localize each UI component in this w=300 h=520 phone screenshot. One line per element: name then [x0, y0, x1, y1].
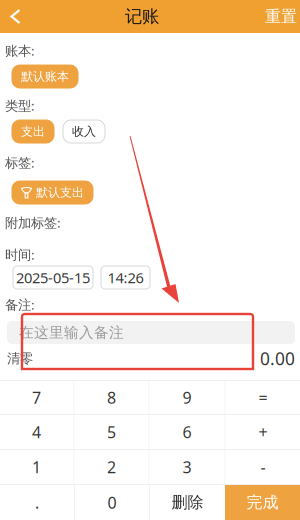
- button[interactable]: 重置: [257, 0, 300, 33]
- staticText: 0.00: [260, 347, 295, 370]
- button[interactable]: 0: [75, 485, 149, 520]
- staticText: .: [35, 492, 39, 513]
- staticText: =: [258, 387, 267, 408]
- button[interactable]: 删除: [150, 485, 225, 520]
- button[interactable]: Back: [0, 0, 27, 33]
- button[interactable]: 清零: [7, 350, 33, 367]
- button[interactable]: 8: [74, 381, 148, 414]
- staticText: 清零: [7, 350, 33, 367]
- button[interactable]: -: [225, 450, 300, 484]
- button[interactable]: 默认支出: [12, 181, 93, 204]
- staticText: 6: [182, 421, 191, 443]
- staticText: 账本:: [5, 42, 35, 59]
- button[interactable]: 完成: [225, 485, 300, 520]
- staticText: 5: [107, 421, 116, 443]
- button[interactable]: 9: [149, 381, 224, 414]
- staticText: 时间:: [5, 246, 35, 263]
- staticText: 重置: [265, 7, 297, 26]
- staticText: 2025-05-15: [16, 268, 90, 287]
- staticText: 14:26: [107, 268, 143, 287]
- button[interactable]: 4: [0, 415, 73, 449]
- button[interactable]: 1: [0, 450, 73, 484]
- staticText: 在这里输入备注: [19, 323, 124, 341]
- staticText: 默认支出: [36, 185, 84, 200]
- staticText: 8: [107, 387, 116, 408]
- staticText: 完成: [246, 493, 278, 512]
- staticText: 默认账本: [21, 69, 69, 84]
- button[interactable]: =: [225, 381, 300, 414]
- staticText: 0: [107, 492, 116, 513]
- staticText: 记账: [125, 6, 159, 27]
- button[interactable]: 在这里输入备注: [7, 321, 295, 344]
- staticText: 删除: [171, 493, 203, 512]
- staticText: 备注:: [5, 296, 35, 313]
- button[interactable]: .: [0, 485, 74, 520]
- button[interactable]: 2: [74, 450, 148, 484]
- button[interactable]: 14:26: [101, 266, 150, 289]
- button[interactable]: 支出: [12, 120, 54, 143]
- button[interactable]: 7: [0, 381, 73, 414]
- staticText: 4: [32, 421, 41, 443]
- button[interactable]: 2025-05-15: [13, 266, 93, 289]
- button[interactable]: 默认账本: [12, 65, 78, 88]
- staticText: 7: [32, 387, 41, 408]
- button[interactable]: +: [225, 415, 300, 449]
- button[interactable]: 收入: [63, 120, 105, 143]
- staticText: 9: [182, 387, 191, 408]
- staticText: 类型:: [5, 97, 35, 114]
- staticText: 支出: [21, 124, 45, 139]
- staticText: +: [258, 421, 267, 443]
- staticText: 1: [32, 456, 41, 478]
- staticText: -: [260, 456, 265, 478]
- staticText: 附加标签:: [5, 214, 61, 231]
- staticText: 标签:: [5, 154, 35, 171]
- staticText: 收入: [72, 124, 96, 139]
- button[interactable]: 6: [149, 415, 224, 449]
- button[interactable]: 3: [149, 450, 224, 484]
- staticText: 3: [182, 456, 191, 478]
- staticText: 2: [107, 456, 116, 478]
- button[interactable]: 5: [74, 415, 148, 449]
